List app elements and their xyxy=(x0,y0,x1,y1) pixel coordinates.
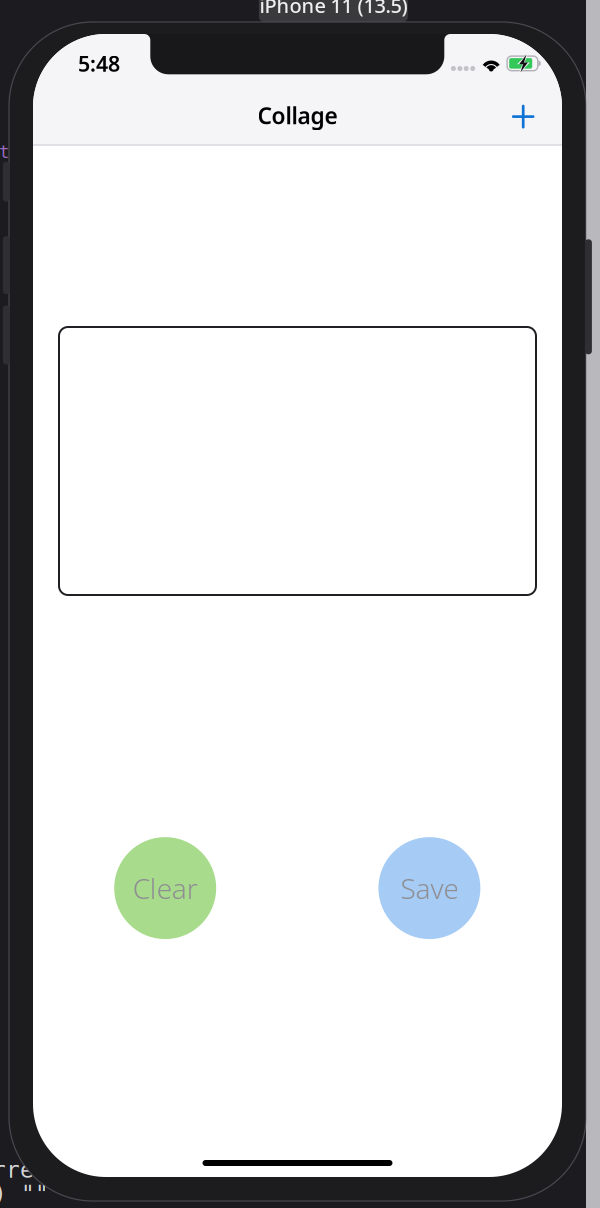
button[interactable]: Clear xyxy=(114,837,216,939)
staticText: Clear xyxy=(133,869,198,907)
button[interactable]: Save xyxy=(378,837,480,939)
staticText: 5:48 xyxy=(78,49,120,78)
button[interactable]: Add xyxy=(501,95,545,139)
staticText: 1) "" xyxy=(0,1181,49,1207)
staticText: t xyxy=(0,142,9,162)
staticText: Collage xyxy=(257,100,337,130)
staticText: urre xyxy=(0,1157,34,1183)
staticText: Save xyxy=(400,869,458,907)
staticText: iPhone 11 (13.5) xyxy=(259,0,407,18)
